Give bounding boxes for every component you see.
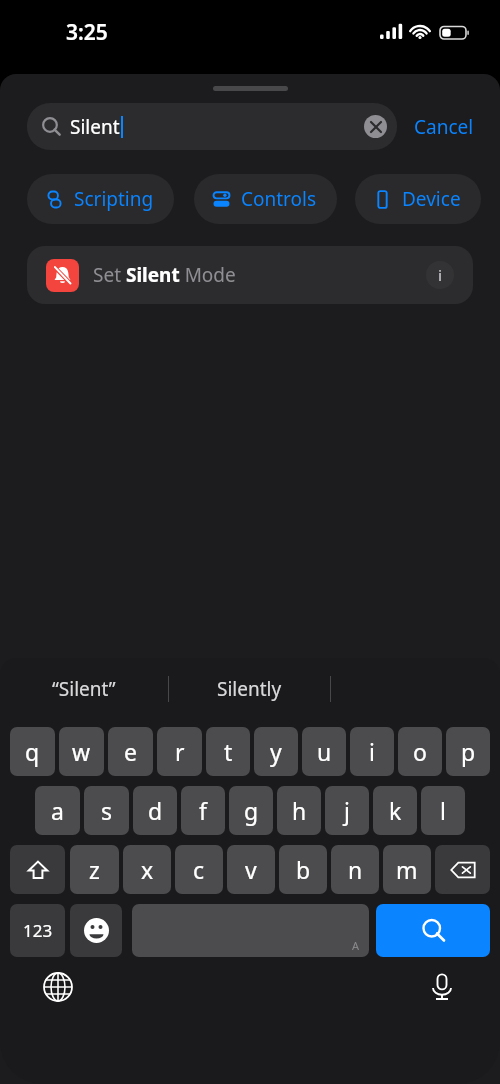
button[interactable]: Cancel [397,114,474,140]
button[interactable]: Emoji [70,904,122,957]
staticText: Scripting [74,186,154,212]
button[interactable]: g [229,786,273,835]
button[interactable]: Backspace [435,845,490,894]
button[interactable]: o [398,727,442,776]
button[interactable]: q [10,727,55,776]
staticText: e [124,736,137,767]
button[interactable]: l [421,786,465,835]
button[interactable]: a [35,786,80,835]
button[interactable]: s [84,786,129,835]
staticText: g [244,795,259,826]
staticText: Set Silent Mode [93,262,236,288]
staticText: Silently [217,676,282,702]
button[interactable]: j [325,786,369,835]
button[interactable]: h [277,786,321,835]
button[interactable]: “Silent” [0,658,168,720]
button[interactable]: Silent [27,103,397,150]
staticText: l [440,795,446,826]
staticText: y [270,736,282,767]
staticText: i [438,265,443,285]
button[interactable]: n [331,845,379,894]
button[interactable]: p [446,727,490,776]
button[interactable]: u [302,727,346,776]
button[interactable]: m [383,845,431,894]
staticText: f [199,795,207,826]
staticText: t [224,736,233,767]
staticText: Device [402,186,461,212]
button[interactable]: Controls [194,174,337,224]
staticText: m [396,854,418,885]
staticText: i [369,736,375,767]
staticText: z [89,854,100,885]
button[interactable]: Silently [169,658,330,720]
staticText: k [389,795,402,826]
staticText: Cancel [414,114,474,140]
button[interactable]: k [373,786,417,835]
button[interactable]: Device [355,174,481,224]
staticText: n [348,854,363,885]
button[interactable]: Info [426,261,454,289]
staticText: c [193,854,205,885]
staticText: 123 [23,919,53,942]
button[interactable]: w [59,727,104,776]
button[interactable]: r [157,727,202,776]
staticText: x [141,854,154,885]
button[interactable]: f [181,786,225,835]
staticText: o [413,736,427,767]
staticText: d [148,795,163,826]
button[interactable]: 123 [10,904,65,957]
button[interactable]: Scripting [27,174,174,224]
button[interactable]: v [227,845,275,894]
button[interactable]: Search [376,904,490,957]
staticText: j [344,795,350,826]
staticText: a [51,795,64,826]
staticText: q [25,736,40,767]
button[interactable]: Set Silent Mode [27,246,473,304]
button[interactable]: e [108,727,153,776]
staticText: s [101,795,113,826]
staticText: p [461,736,476,767]
button[interactable]: z [70,845,119,894]
staticText: r [175,736,185,767]
staticText: h [292,795,307,826]
button[interactable]: Clear text [364,115,387,138]
staticText: Controls [241,186,317,212]
button[interactable]: y [254,727,298,776]
staticText: A [352,938,360,953]
button[interactable]: c [175,845,223,894]
staticText: u [317,736,332,767]
button[interactable]: Shift [10,845,65,894]
staticText: v [245,854,257,885]
button[interactable]: Change keyboard [36,965,80,1009]
button[interactable]: d [133,786,177,835]
staticText: w [72,736,91,767]
staticText: 3:25 [66,18,108,47]
staticText: b [296,854,311,885]
button[interactable]: t [206,727,250,776]
button[interactable]: b [279,845,327,894]
staticText: Silent [70,114,120,140]
staticText: “Silent” [52,676,116,702]
button[interactable]: A [132,904,369,957]
button[interactable]: i [350,727,394,776]
button[interactable]: x [123,845,171,894]
button[interactable]: Dictate [420,965,464,1009]
